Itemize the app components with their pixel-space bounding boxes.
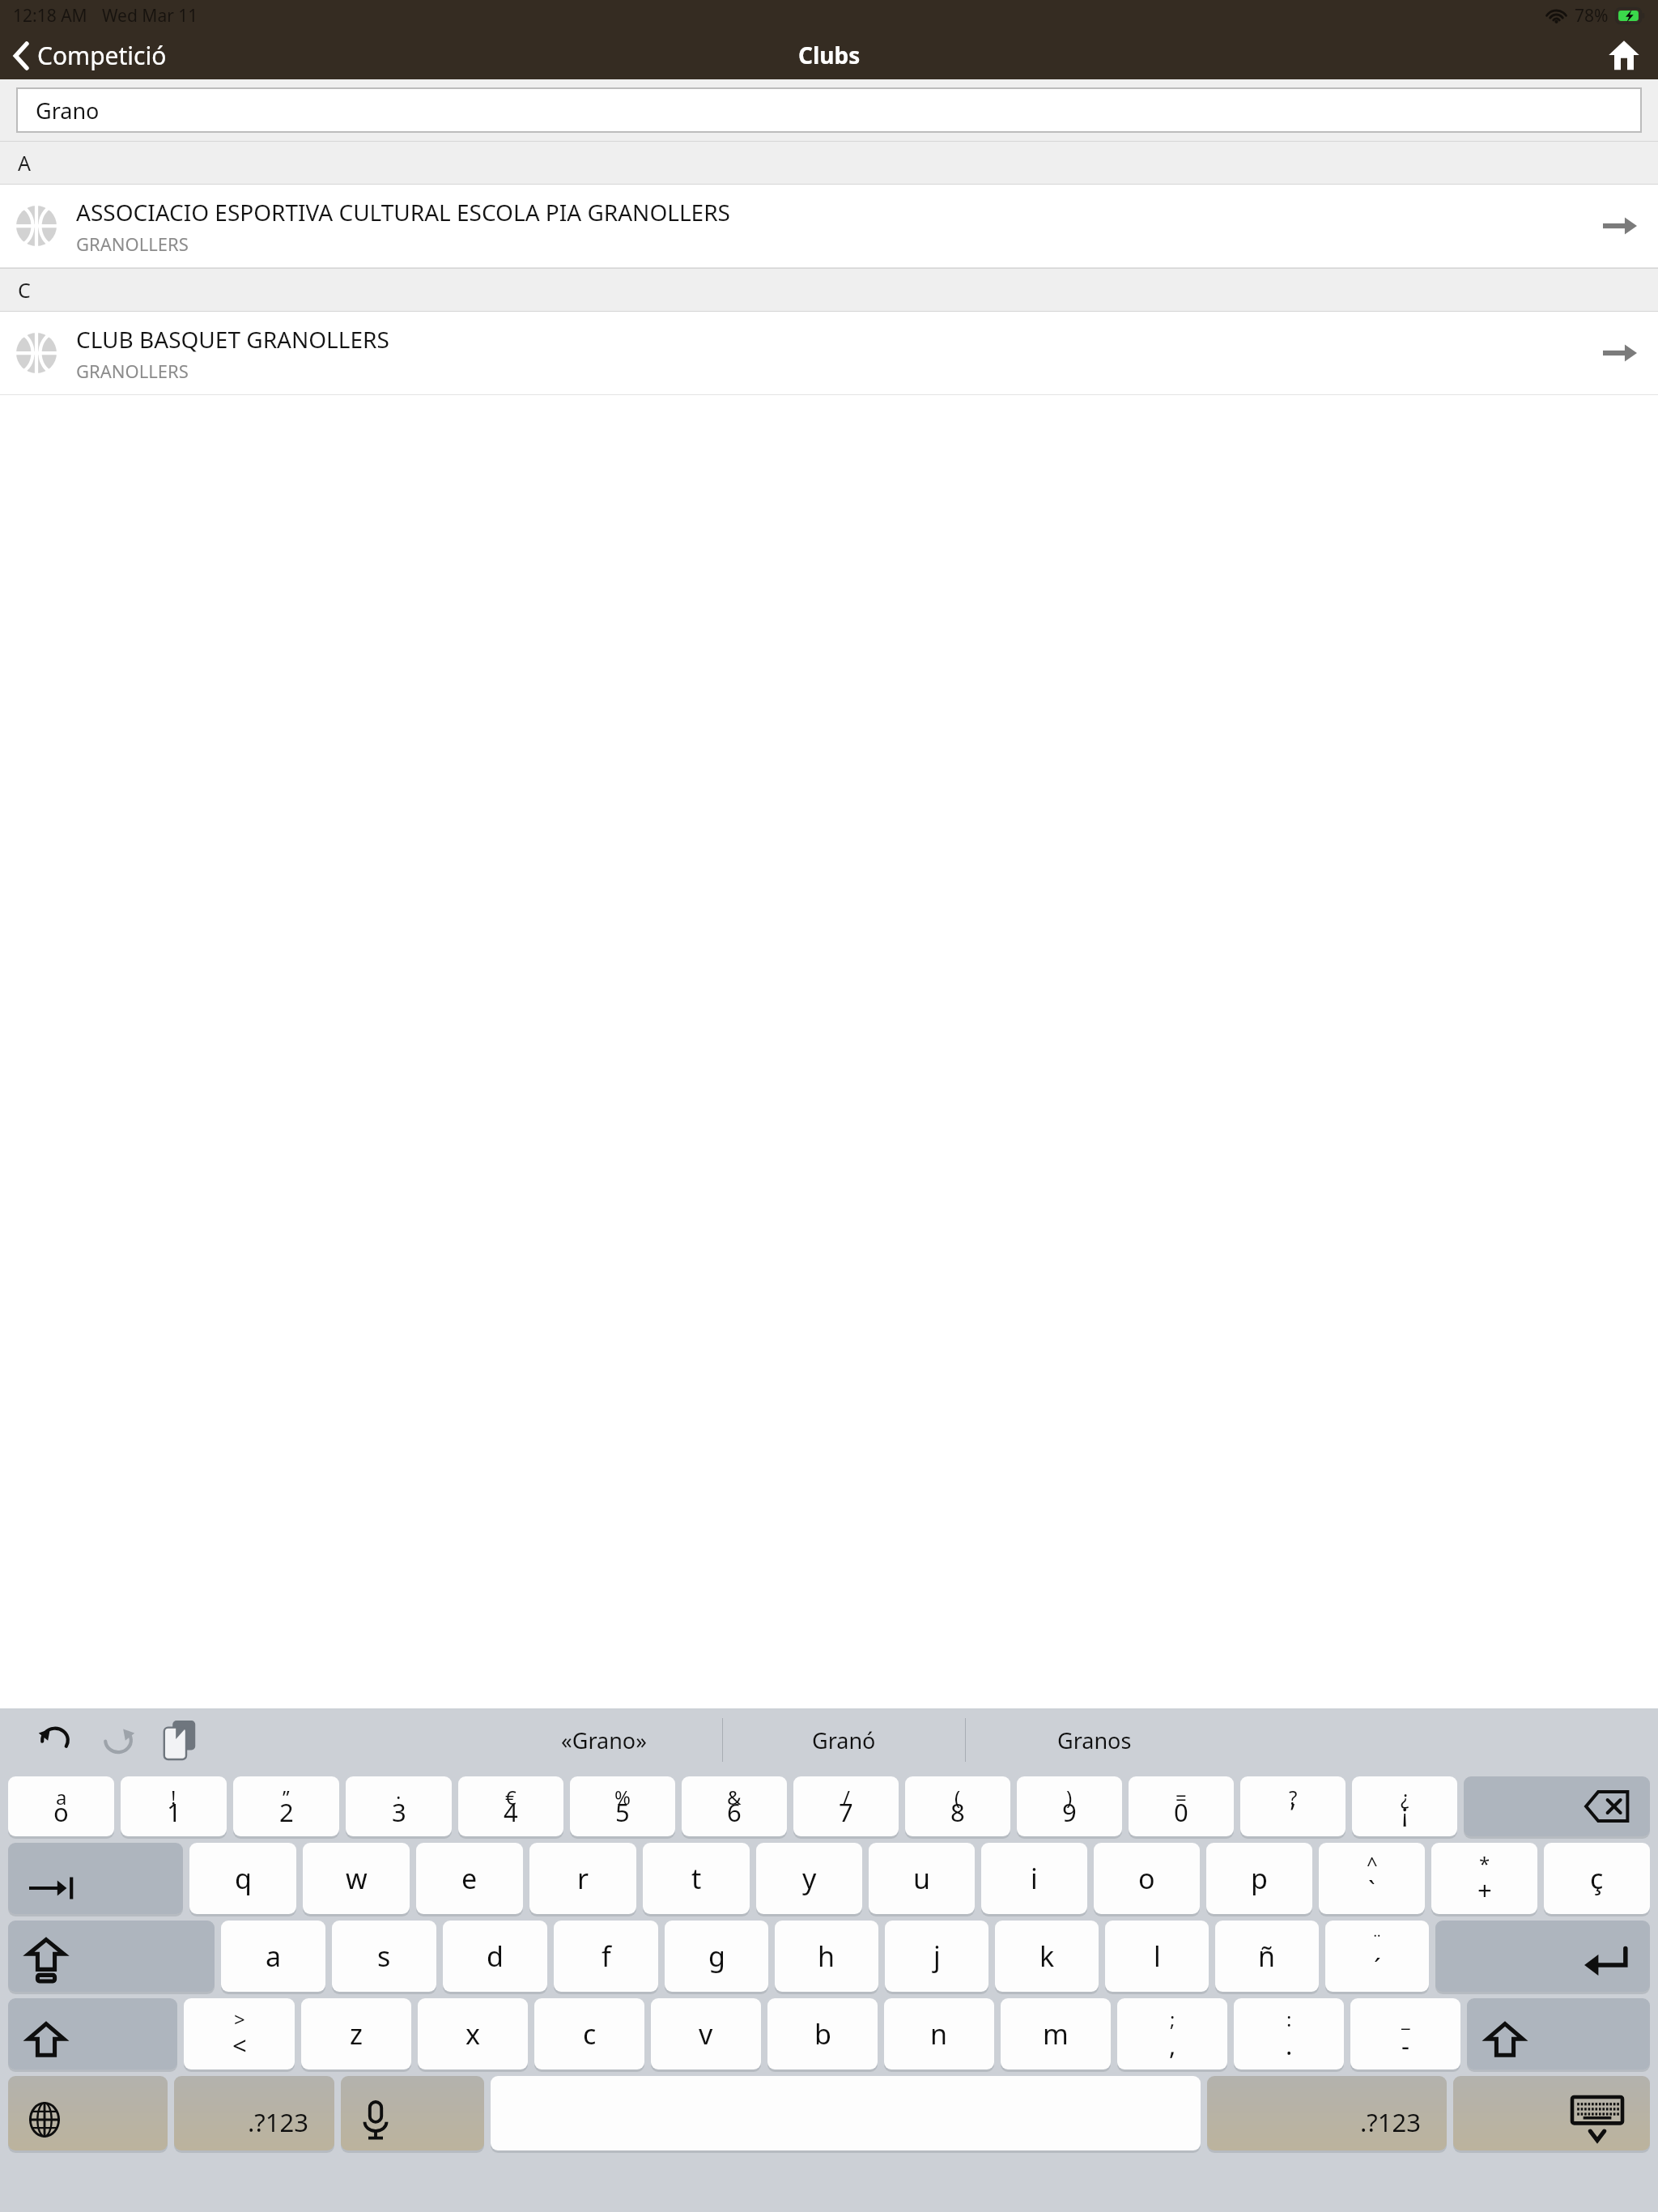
- staticText: .?123: [1360, 2105, 1421, 2139]
- button[interactable]: e: [416, 1843, 523, 1914]
- button[interactable]: Shift: [1467, 1998, 1650, 2069]
- button[interactable]: y: [756, 1843, 862, 1914]
- staticText: C: [18, 276, 31, 304]
- button[interactable]: =: [1129, 1776, 1234, 1836]
- button[interactable]: «Grano»: [486, 1708, 722, 1772]
- button[interactable]: (: [905, 1776, 1010, 1836]
- button[interactable]: !: [121, 1776, 227, 1836]
- button[interactable]: ¨: [1325, 1921, 1429, 1992]
- staticText: s: [377, 1938, 391, 1975]
- staticText: x: [466, 2015, 480, 2052]
- button[interactable]: o: [1094, 1843, 1200, 1914]
- button[interactable]: Change keyboard: [8, 2076, 168, 2150]
- button[interactable]: Home: [1590, 32, 1658, 79]
- button[interactable]: u: [869, 1843, 975, 1914]
- button[interactable]: Competició: [0, 32, 180, 79]
- staticText: 1: [167, 1795, 181, 1829]
- button[interactable]: €: [458, 1776, 563, 1836]
- button[interactable]: &: [682, 1776, 787, 1836]
- button[interactable]: Shift: [8, 1921, 215, 1992]
- button[interactable]: a: [8, 1776, 114, 1836]
- button[interactable]: _: [1350, 1998, 1460, 2069]
- button[interactable]: Granó: [722, 1708, 965, 1772]
- button[interactable]: ?: [1240, 1776, 1346, 1836]
- button[interactable]: Numbers and symbols: [1207, 2076, 1447, 2150]
- button[interactable]: p: [1206, 1843, 1312, 1914]
- staticText: ´: [1374, 1950, 1381, 1984]
- button[interactable]: a: [221, 1921, 325, 1992]
- staticText: c: [583, 2015, 597, 2052]
- button[interactable]: Backspace: [1464, 1776, 1650, 1836]
- button[interactable]: /: [793, 1776, 899, 1836]
- button[interactable]: l: [1105, 1921, 1209, 1992]
- button[interactable]: Granos: [965, 1708, 1224, 1772]
- button[interactable]: Grano: [18, 89, 1640, 131]
- staticText: 6: [727, 1795, 742, 1829]
- button[interactable]: Paste: [155, 1712, 204, 1767]
- staticText: Granó: [812, 1725, 876, 1755]
- button[interactable]: j: [885, 1921, 988, 1992]
- button[interactable]: Numbers and symbols: [174, 2076, 334, 2150]
- button[interactable]: z: [301, 1998, 411, 2069]
- staticText: Granos: [1057, 1725, 1132, 1755]
- staticText: ç: [1590, 1860, 1604, 1897]
- button[interactable]: Shift: [8, 1998, 177, 2069]
- button[interactable]: k: [995, 1921, 1099, 1992]
- button[interactable]: n: [884, 1998, 994, 2069]
- button[interactable]: ): [1017, 1776, 1122, 1836]
- button[interactable]: r: [529, 1843, 636, 1914]
- button[interactable]: i: [981, 1843, 1087, 1914]
- button[interactable]: w: [303, 1843, 410, 1914]
- button[interactable]: h: [775, 1921, 878, 1992]
- button[interactable]: Redo: [92, 1715, 144, 1765]
- button[interactable]: t: [643, 1843, 750, 1914]
- button[interactable]: *: [1431, 1843, 1537, 1914]
- button[interactable]: x: [418, 1998, 528, 2069]
- button[interactable]: %: [570, 1776, 675, 1836]
- button[interactable]: Return: [1435, 1921, 1650, 1992]
- staticText: Wed Mar 11: [102, 4, 198, 28]
- button[interactable]: b: [767, 1998, 878, 2069]
- staticText: u: [913, 1860, 931, 1897]
- staticText: ·: [396, 1784, 402, 1810]
- staticText: ?: [1289, 1784, 1298, 1810]
- other: Open club: [1603, 342, 1637, 364]
- button[interactable]: v: [651, 1998, 761, 2069]
- button[interactable]: Dictation: [341, 2076, 484, 2150]
- button[interactable]: c: [534, 1998, 644, 2069]
- button[interactable]: q: [189, 1843, 296, 1914]
- staticText: (: [954, 1784, 961, 1810]
- staticText: _: [1401, 2006, 1410, 2032]
- staticText: v: [699, 2015, 713, 2052]
- button[interactable]: ¿: [1352, 1776, 1457, 1836]
- button[interactable]: ASSOCIACIO ESPORTIVA CULTURAL ESCOLA PIA…: [0, 185, 1658, 267]
- staticText: A: [18, 149, 31, 177]
- button[interactable]: d: [443, 1921, 547, 1992]
- button[interactable]: ·: [346, 1776, 452, 1836]
- staticText: .?123: [248, 2105, 308, 2139]
- staticText: f: [602, 1938, 611, 1975]
- staticText: ¿: [1401, 1784, 1409, 1810]
- button[interactable]: ñ: [1215, 1921, 1319, 1992]
- button[interactable]: ;: [1117, 1998, 1227, 2069]
- button[interactable]: ç: [1544, 1843, 1650, 1914]
- staticText: p: [1251, 1860, 1268, 1897]
- staticText: 4: [504, 1795, 518, 1829]
- button[interactable]: s: [332, 1921, 436, 1992]
- button[interactable]: ^: [1319, 1843, 1425, 1914]
- button[interactable]: CLUB BASQUET GRANOLLERS: [0, 312, 1658, 394]
- button[interactable]: ”: [233, 1776, 339, 1836]
- button[interactable]: g: [665, 1921, 768, 1992]
- button[interactable]: :: [1234, 1998, 1344, 2069]
- staticText: z: [350, 2015, 363, 2052]
- button[interactable]: Tab: [8, 1843, 183, 1914]
- button[interactable]: m: [1001, 1998, 1111, 2069]
- button[interactable]: >: [184, 1998, 295, 2069]
- staticText: a: [56, 1784, 67, 1810]
- button[interactable]: Hide keyboard: [1453, 2076, 1650, 2150]
- staticText: o: [53, 1795, 69, 1829]
- button[interactable]: f: [554, 1921, 658, 1992]
- button[interactable]: Undo: [29, 1715, 81, 1765]
- staticText: b: [814, 2015, 831, 2052]
